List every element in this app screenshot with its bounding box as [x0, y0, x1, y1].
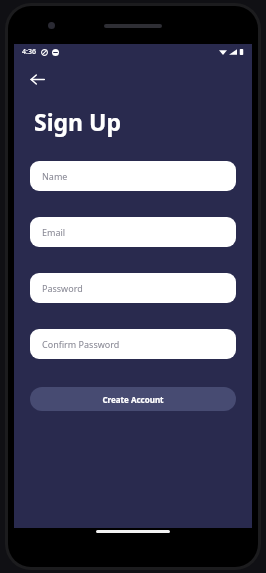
button[interactable]: Confirm Password — [30, 329, 236, 359]
staticText: Password — [42, 282, 83, 294]
button[interactable]: Name — [30, 161, 236, 191]
staticText: Create Account — [102, 394, 164, 405]
staticText: 4:36 — [22, 47, 36, 57]
button[interactable]: Back — [20, 62, 54, 96]
staticText: Name — [42, 170, 68, 182]
button[interactable]: Email — [30, 217, 236, 247]
button[interactable]: Create Account — [30, 387, 236, 411]
staticText: Confirm Password — [42, 338, 120, 350]
staticText: Email — [42, 226, 66, 238]
button[interactable]: Password — [30, 273, 236, 303]
staticText: Sign Up — [34, 106, 121, 137]
